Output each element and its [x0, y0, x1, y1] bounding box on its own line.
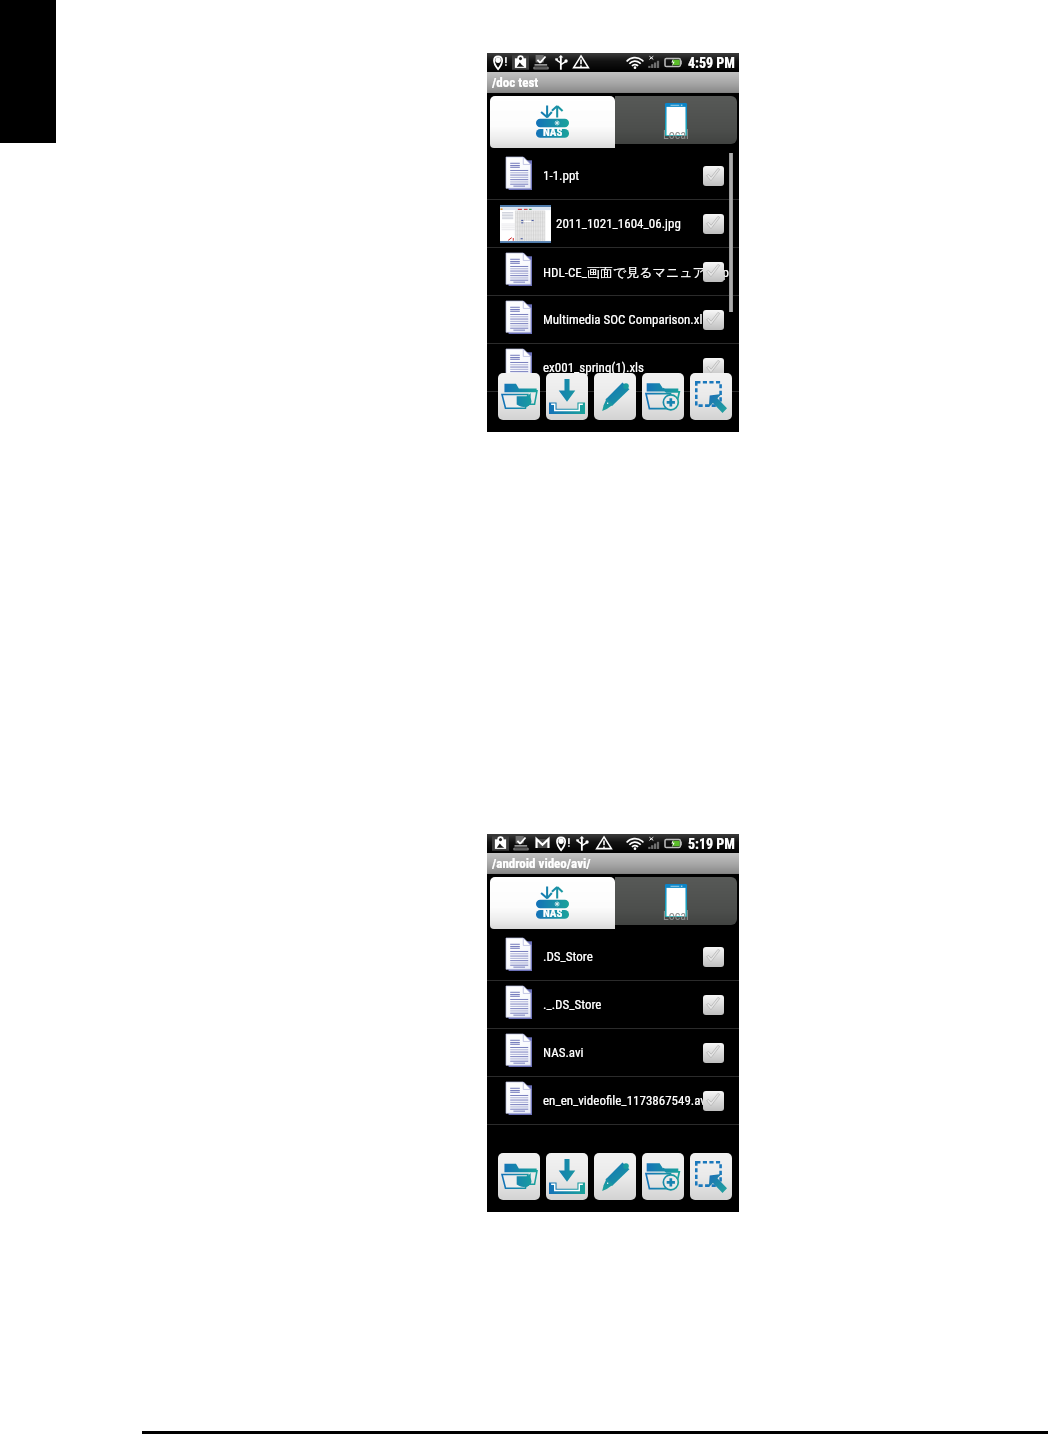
button[interactable]: ex001_spring(1).xls	[487, 344, 739, 391]
button[interactable]: Multimedia SOC Comparison.xls	[487, 296, 739, 343]
button[interactable]: Copy to	[498, 373, 540, 420]
staticText: 4:59 PM	[688, 55, 735, 71]
button[interactable]: Select	[703, 995, 724, 1015]
other: Local	[663, 881, 689, 922]
button[interactable]: Rename	[594, 1153, 636, 1200]
button[interactable]: Select	[703, 358, 724, 378]
button[interactable]: NAS.avi	[487, 1029, 739, 1076]
button[interactable]: New folder	[642, 1153, 684, 1200]
button[interactable]: NAS	[490, 877, 615, 929]
button[interactable]: Copy to	[498, 1153, 540, 1200]
button[interactable]: en_en_videofile_1173867549.av	[487, 1077, 739, 1124]
button[interactable]: 2011_1021_1604_06.jpg	[487, 200, 739, 247]
other: Local	[663, 100, 689, 141]
staticText: 5:19 PM	[688, 836, 735, 852]
staticText: Local	[663, 128, 689, 142]
staticText: NAS	[543, 907, 563, 920]
staticText: NAS.avi	[543, 1045, 584, 1060]
button[interactable]: Select items	[690, 373, 732, 420]
button[interactable]: Rename	[594, 373, 636, 420]
button[interactable]: 1-1.ppt	[487, 152, 739, 199]
other: NAS	[536, 105, 569, 138]
button[interactable]: Local	[615, 96, 737, 144]
staticText: Multimedia SOC Comparison.xls	[543, 312, 709, 327]
other: NAS	[536, 886, 569, 919]
staticText: /doc test	[492, 75, 539, 90]
button[interactable]: Select items	[690, 1153, 732, 1200]
staticText: Local	[663, 909, 689, 923]
staticText: NAS	[543, 126, 563, 139]
button[interactable]: ._.DS_Store	[487, 981, 739, 1028]
staticText: HDL-CE_画面で見るマニュアル.p	[543, 264, 729, 280]
button[interactable]: Select	[703, 947, 724, 967]
button[interactable]: NAS	[490, 96, 615, 148]
button[interactable]: HDL-CE_画面で見るマニュアル.p	[487, 248, 739, 295]
button[interactable]: Download	[546, 1153, 588, 1200]
button[interactable]: New folder	[642, 373, 684, 420]
staticText: en_en_videofile_1173867549.av	[543, 1093, 706, 1108]
button[interactable]: Select	[703, 1043, 724, 1063]
button[interactable]: Download	[546, 373, 588, 420]
button[interactable]: Select	[703, 214, 724, 234]
staticText: 1-1.ppt	[543, 168, 580, 183]
button[interactable]: Select	[703, 166, 724, 186]
button[interactable]: Select	[703, 1091, 724, 1111]
staticText: 2011_1021_1604_06.jpg	[556, 216, 681, 231]
staticText: .DS_Store	[543, 949, 593, 964]
button[interactable]: Select	[703, 262, 724, 282]
button[interactable]: .DS_Store	[487, 933, 739, 980]
button[interactable]: Select	[703, 310, 724, 330]
button[interactable]: Local	[615, 877, 737, 925]
staticText: ._.DS_Store	[543, 997, 602, 1012]
staticText: /android video/avi/	[492, 856, 591, 871]
staticText: ex001_spring(1).xls	[543, 360, 644, 375]
